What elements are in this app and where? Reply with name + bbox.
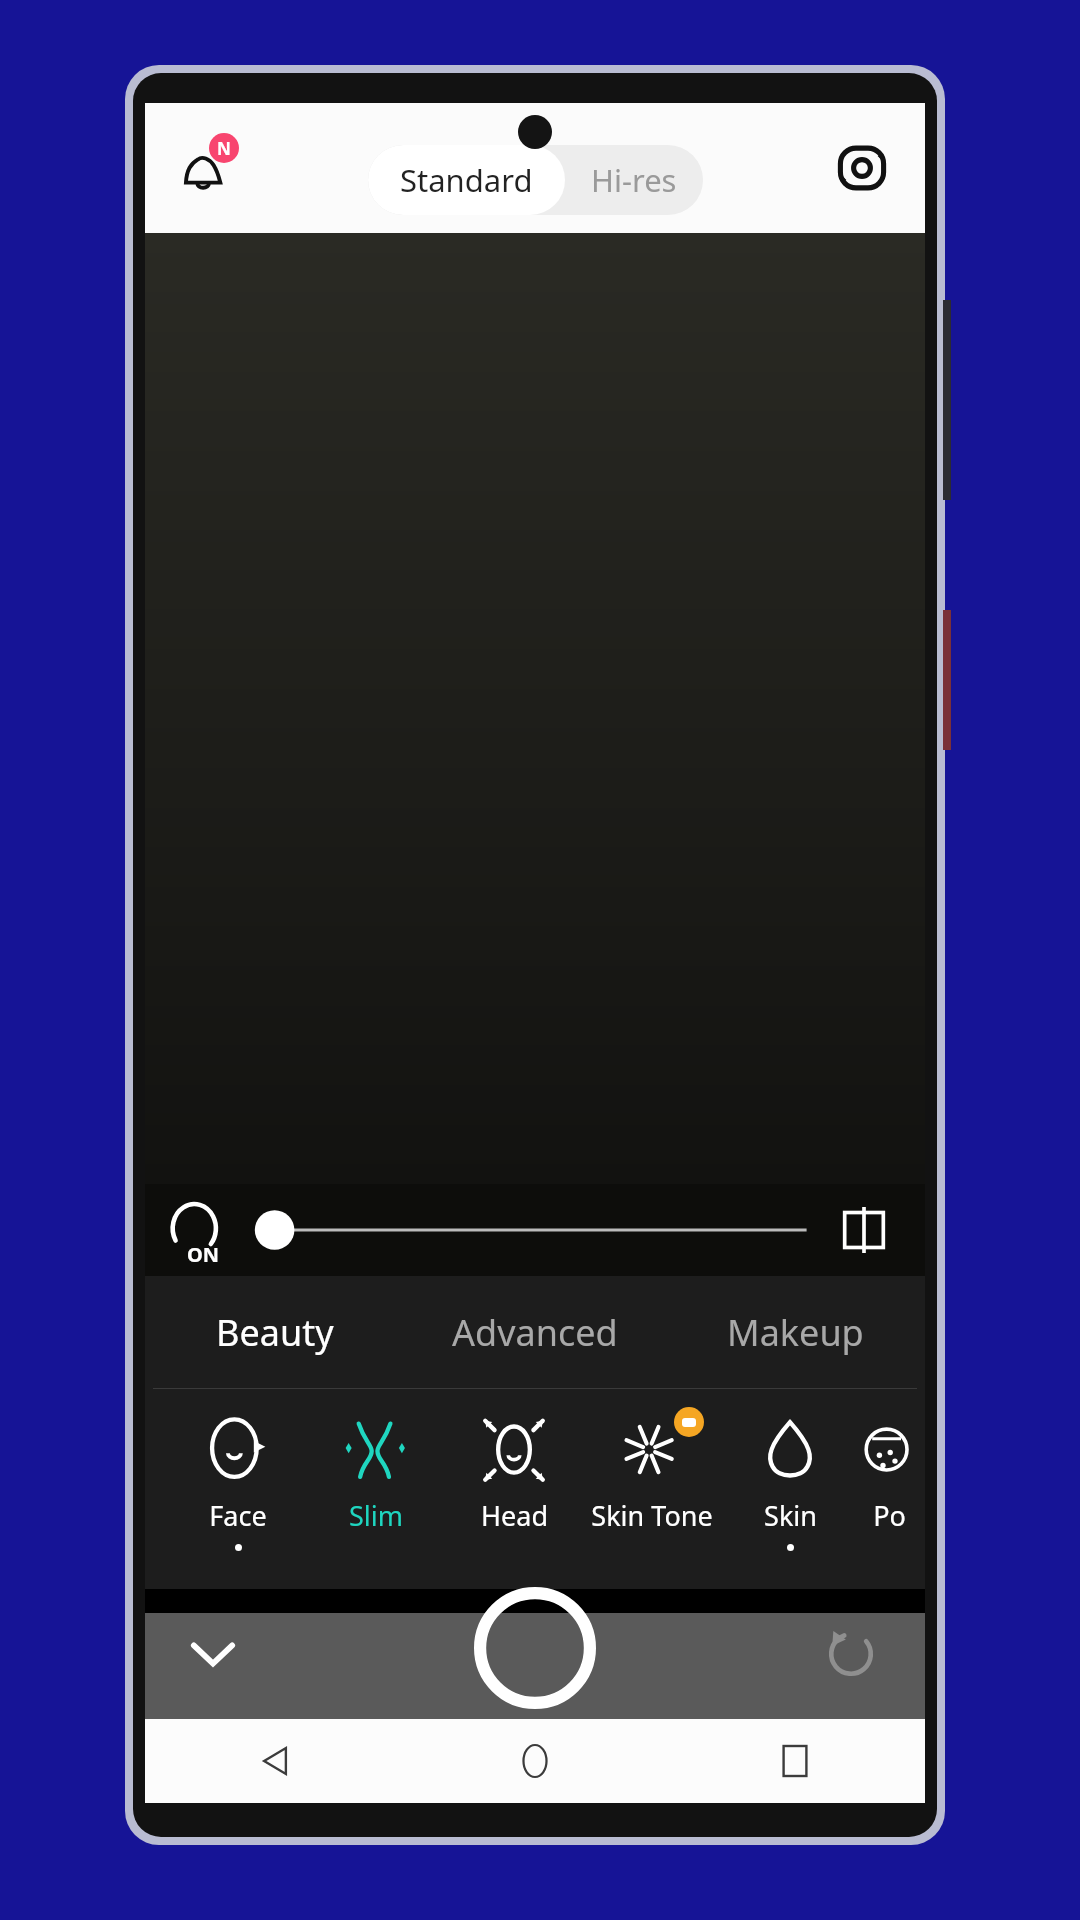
button[interactable]: Beauty	[145, 1276, 405, 1388]
staticText: Face	[209, 1497, 267, 1534]
button[interactable]: Collapse panel	[175, 1616, 251, 1692]
button[interactable]: Makeup	[665, 1276, 925, 1388]
button[interactable]: Shutter	[474, 1587, 596, 1709]
button[interactable]: Skin Tone	[583, 1389, 721, 1589]
staticText: Makeup	[727, 1308, 864, 1357]
staticText: N	[217, 137, 231, 160]
button[interactable]: Head	[445, 1389, 583, 1589]
staticText: Standard	[400, 159, 533, 201]
button[interactable]: Recents	[665, 1719, 925, 1803]
button[interactable]: Switch camera	[825, 131, 899, 205]
staticText: Hi-res	[591, 159, 677, 201]
staticText: Beauty	[216, 1308, 334, 1357]
button[interactable]: Advanced	[405, 1276, 665, 1388]
button[interactable]: Compare	[829, 1195, 899, 1265]
staticText: Skin Tone	[591, 1497, 713, 1534]
button[interactable]: Reset	[813, 1616, 889, 1692]
staticText: ON	[187, 1241, 220, 1268]
button[interactable]: Notifications	[167, 125, 253, 211]
button[interactable]: Back	[145, 1719, 405, 1803]
button[interactable]: Beauty on	[159, 1192, 235, 1268]
button[interactable]: Intensity slider	[255, 1200, 815, 1260]
staticText: Advanced	[452, 1308, 618, 1357]
staticText: Po	[873, 1497, 906, 1534]
button[interactable]: Po	[859, 1389, 919, 1589]
button[interactable]: Slim	[307, 1389, 445, 1589]
button[interactable]: Hi-res	[565, 145, 703, 215]
staticText: Skin	[764, 1497, 817, 1534]
button[interactable]: Face	[169, 1389, 307, 1589]
button[interactable]: Home	[405, 1719, 665, 1803]
button[interactable]: Standard	[368, 145, 565, 215]
staticText: Head	[481, 1497, 548, 1534]
button[interactable]: Skin	[721, 1389, 859, 1589]
staticText: Slim	[349, 1497, 403, 1534]
